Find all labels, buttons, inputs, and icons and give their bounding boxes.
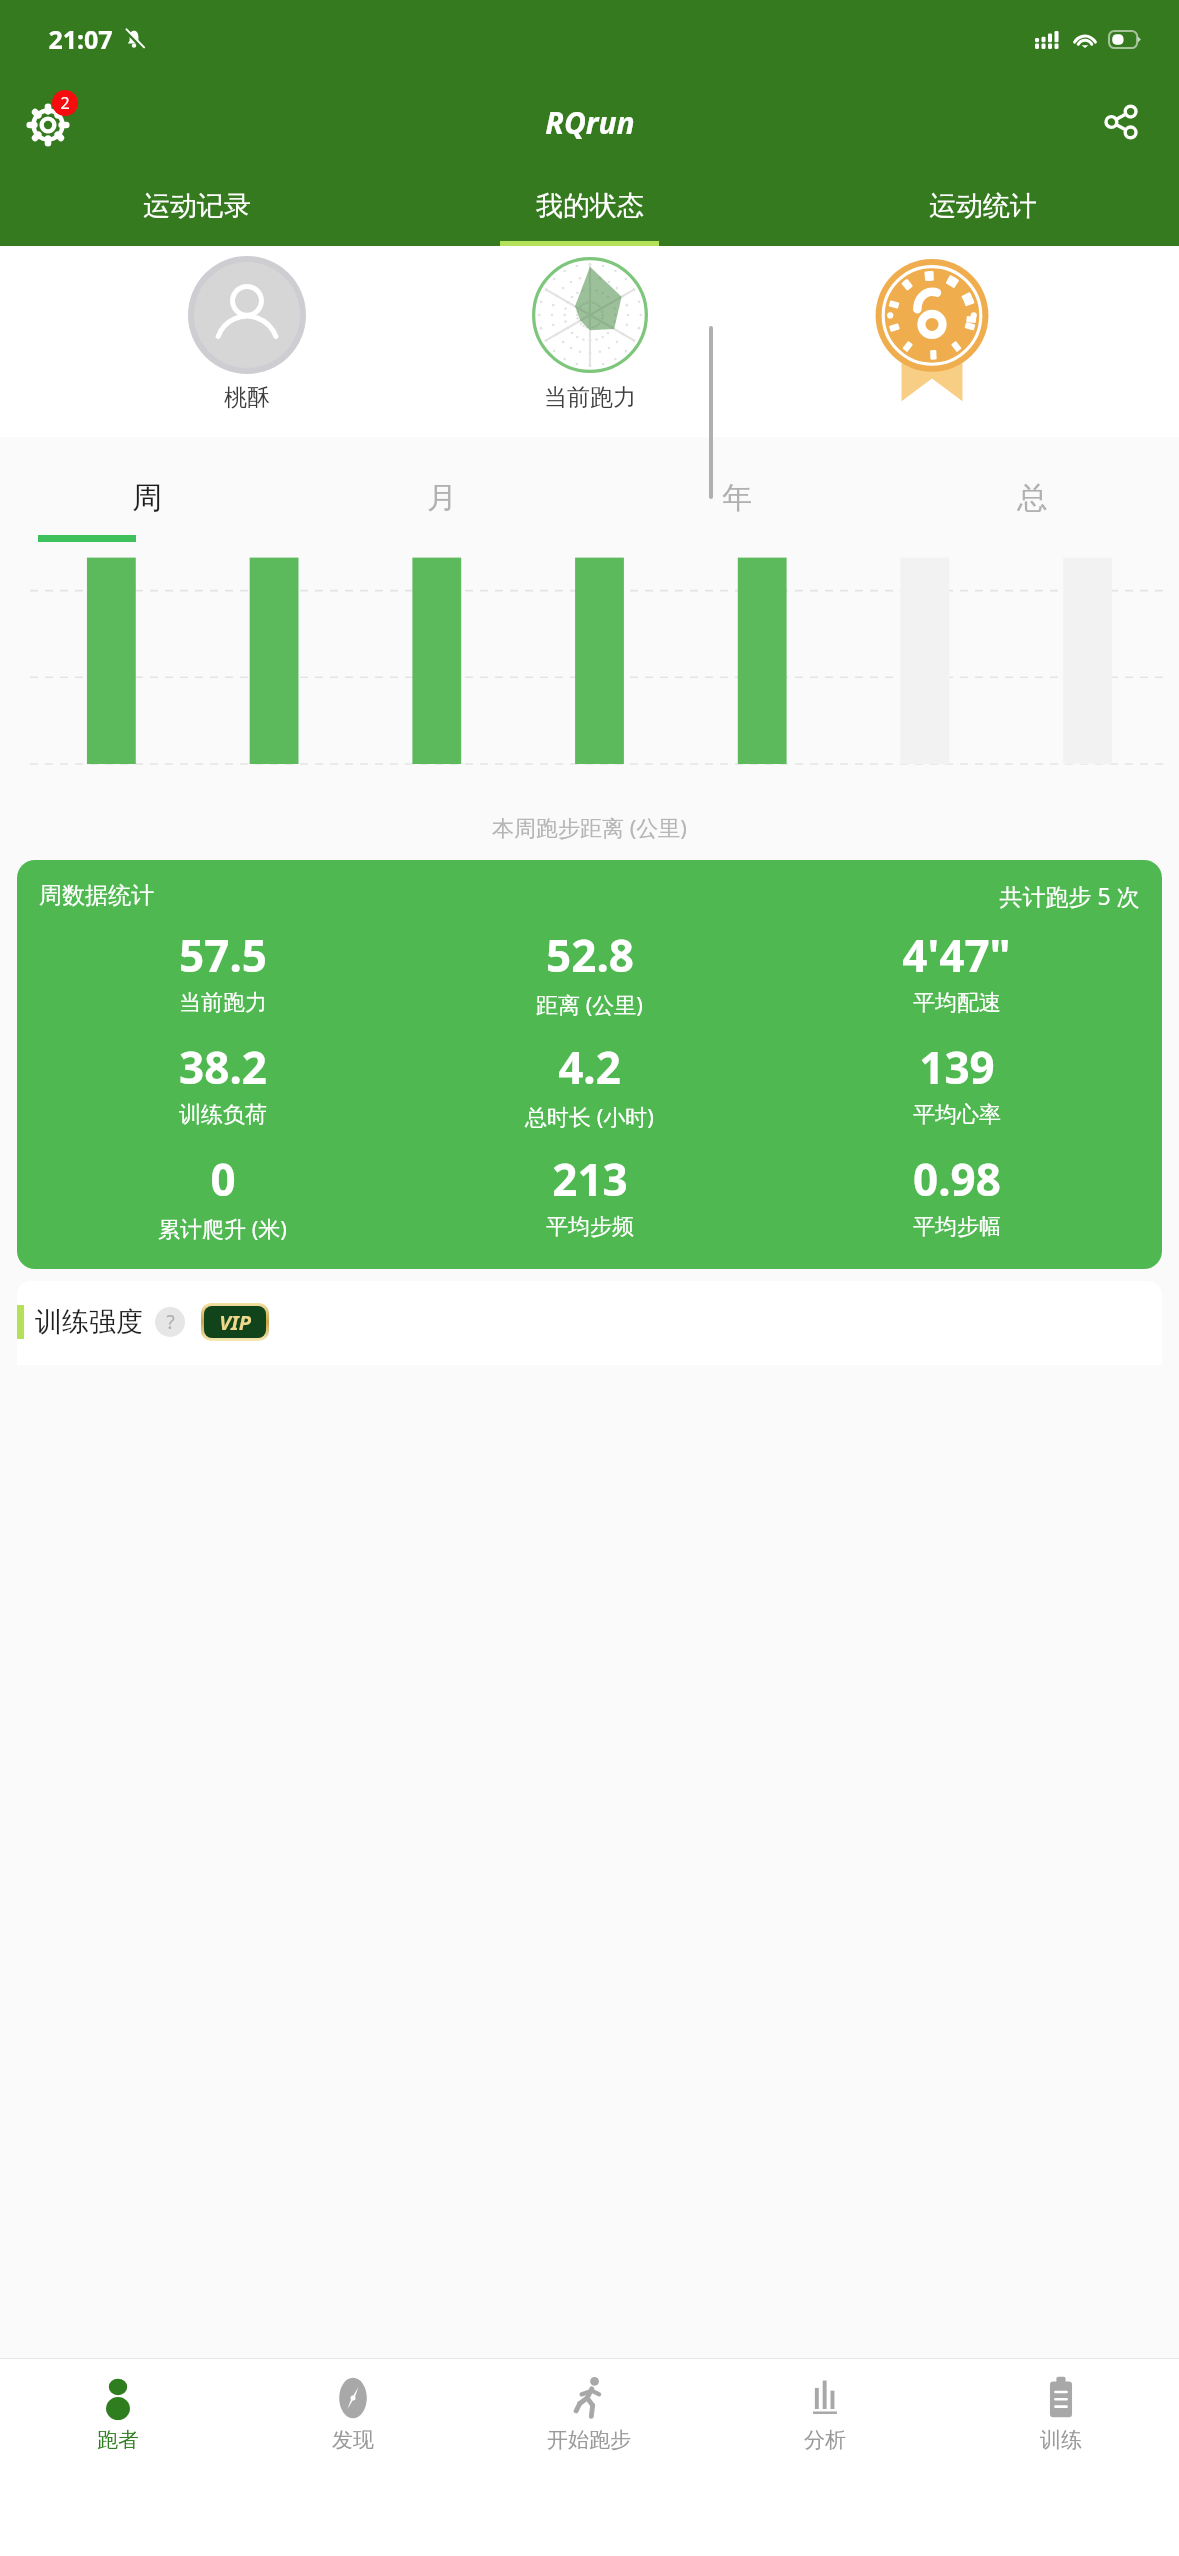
staticText: 21:07 (48, 22, 113, 56)
button[interactable]: 运动统计 (786, 166, 1179, 246)
button[interactable]: 训练强度 (17, 1281, 1162, 1365)
button[interactable] (837, 256, 1027, 404)
button[interactable]: 发现 (235, 2359, 471, 2484)
staticText: 平均步幅 (913, 1213, 1001, 1241)
button[interactable]: 开始跑步 (471, 2359, 707, 2484)
staticText: 4'47" (902, 925, 1011, 985)
button[interactable]: 分析 (707, 2359, 943, 2484)
staticText: 跑者 (97, 2427, 139, 2453)
staticText: RQrun (545, 102, 635, 143)
button[interactable]: VIP (204, 1306, 266, 1338)
staticText: 开始跑步 (547, 2427, 631, 2453)
staticText: 4.2 (558, 1037, 621, 1097)
staticText: 发现 (332, 2427, 374, 2453)
staticText: 平均步频 (546, 1213, 634, 1241)
button[interactable]: 当前跑力 (495, 256, 685, 412)
staticText: 当前跑力 (544, 383, 636, 412)
staticText: 本周跑步距离 (公里) (492, 812, 687, 842)
staticText: 52.8 (546, 925, 634, 985)
staticText: 平均配速 (913, 989, 1001, 1017)
button[interactable]: Share (1093, 94, 1149, 150)
staticText: 月 (427, 479, 457, 517)
button[interactable]: 跑者 (0, 2359, 235, 2484)
staticText: 总 (1017, 479, 1047, 517)
staticText: 平均心率 (913, 1101, 1001, 1129)
staticText: VIP (219, 1309, 251, 1336)
staticText: ? (166, 1309, 175, 1335)
staticText: 总时长 (小时) (525, 1101, 654, 1131)
staticText: 距离 (公里) (536, 989, 643, 1019)
staticText: 共计跑步 5 次 (999, 880, 1140, 911)
button[interactable]: 训练 (943, 2359, 1179, 2484)
staticText: 桃酥 (224, 383, 270, 412)
staticText: 训练负荷 (179, 1101, 267, 1129)
button[interactable]: 总 (884, 450, 1179, 546)
button[interactable]: 周 (0, 450, 294, 546)
staticText: 213 (552, 1149, 628, 1209)
staticText: 年 (722, 479, 752, 517)
button[interactable]: 我的状态 (393, 166, 786, 246)
staticText: 57.5 (179, 925, 267, 985)
staticText: 38.2 (179, 1037, 267, 1097)
staticText: 0.98 (913, 1149, 1001, 1209)
staticText: 运动记录 (143, 189, 251, 223)
staticText: 我的状态 (536, 189, 644, 223)
staticText: 训练强度 (35, 1305, 143, 1339)
staticText: 周数据统计 (39, 881, 154, 910)
button[interactable]: 年 (589, 450, 884, 546)
staticText: 2 (60, 92, 70, 114)
button[interactable]: Settings (16, 90, 80, 154)
button[interactable]: Help (155, 1307, 185, 1337)
staticText: 累计爬升 (米) (158, 1213, 287, 1243)
button[interactable]: 桃酥 (152, 256, 342, 412)
staticText: 周 (132, 479, 162, 517)
staticText: 139 (919, 1037, 995, 1097)
staticText: 运动统计 (929, 189, 1037, 223)
staticText: 当前跑力 (179, 989, 267, 1017)
button[interactable]: 运动记录 (0, 166, 393, 246)
button[interactable]: 月 (294, 450, 589, 546)
button[interactable]: 周数据统计 (17, 860, 1162, 1269)
staticText: 训练 (1040, 2427, 1082, 2453)
staticText: 0 (210, 1149, 236, 1209)
staticText: 分析 (804, 2427, 846, 2453)
